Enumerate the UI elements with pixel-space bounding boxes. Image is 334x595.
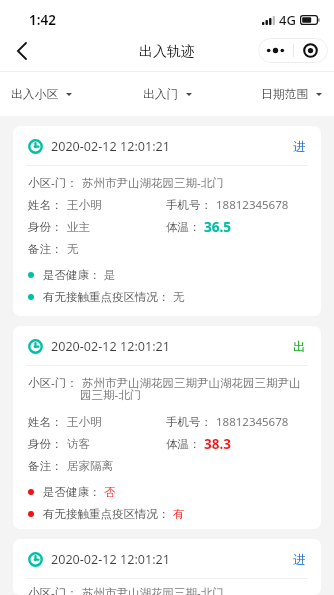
staticText: 出入轨迹	[139, 43, 195, 61]
staticText: 备注：	[28, 242, 63, 256]
staticText: 身份：	[28, 437, 63, 451]
staticText: 有无接触重点疫区情况：	[43, 290, 170, 304]
staticText: 38.3	[204, 435, 231, 453]
staticText: 园三期-北门	[80, 387, 142, 403]
button[interactable]: 2020-02-12 12:01:21	[13, 126, 321, 316]
staticText: 2020-02-12 12:01:21	[51, 551, 170, 568]
staticText: 身份：	[28, 220, 63, 234]
staticText: 手机号：	[166, 198, 212, 212]
staticText: 出入门	[143, 87, 179, 102]
staticText: 小区-门：	[28, 585, 78, 595]
button[interactable]: 更多	[258, 38, 293, 63]
staticText: 苏州市尹山湖花园三期-北门	[82, 175, 224, 191]
staticText: 王小明	[67, 415, 102, 429]
staticText: 是否健康：	[43, 268, 101, 282]
button[interactable]: 出入小区	[4, 72, 79, 116]
staticText: 进	[293, 552, 306, 568]
staticText: 有无接触重点疫区情况：	[43, 507, 170, 521]
button[interactable]: 出入门	[136, 72, 199, 116]
button[interactable]: 2020-02-12 12:01:21	[13, 539, 321, 595]
staticText: 1:42	[29, 11, 56, 29]
button[interactable]: 日期范围	[254, 72, 329, 116]
staticText: 是	[104, 268, 116, 282]
staticText: 体温：	[166, 220, 201, 234]
staticText: 36.5	[204, 218, 231, 236]
staticText: 18812345678	[216, 414, 289, 430]
staticText: 苏州市尹山湖花园三期-北门	[82, 585, 224, 595]
staticText: 王小明	[67, 198, 102, 212]
staticText: 2020-02-12 12:01:21	[51, 138, 170, 155]
staticText: 出	[293, 339, 306, 355]
staticText: 有	[173, 507, 185, 521]
staticText: 小区-门：	[28, 375, 78, 391]
staticText: 4G	[279, 11, 296, 29]
staticText: 姓名：	[28, 198, 63, 212]
staticText: 进	[293, 139, 306, 155]
staticText: 访客	[67, 437, 90, 451]
button[interactable]: 2020-02-12 12:01:21	[13, 326, 321, 529]
button[interactable]: 关闭	[293, 38, 328, 63]
staticText: 出入小区	[11, 87, 59, 102]
staticText: 日期范围	[261, 87, 309, 102]
staticText: 居家隔离	[67, 459, 113, 473]
staticText: 否	[104, 485, 116, 499]
button[interactable]: 返回	[4, 34, 38, 68]
staticText: 无	[173, 290, 185, 304]
staticText: 2020-02-12 12:01:21	[51, 338, 170, 355]
staticText: 小区-门：	[28, 175, 78, 191]
staticText: 苏州市尹山湖花园三期尹山湖花园三期尹山湖花	[82, 376, 306, 390]
staticText: 姓名：	[28, 415, 63, 429]
staticText: 体温：	[166, 437, 201, 451]
staticText: 备注：	[28, 459, 63, 473]
staticText: 是否健康：	[43, 485, 101, 499]
staticText: 手机号：	[166, 415, 212, 429]
staticText: 18812345678	[216, 197, 289, 213]
staticText: 无	[67, 242, 79, 256]
staticText: 业主	[67, 220, 90, 234]
